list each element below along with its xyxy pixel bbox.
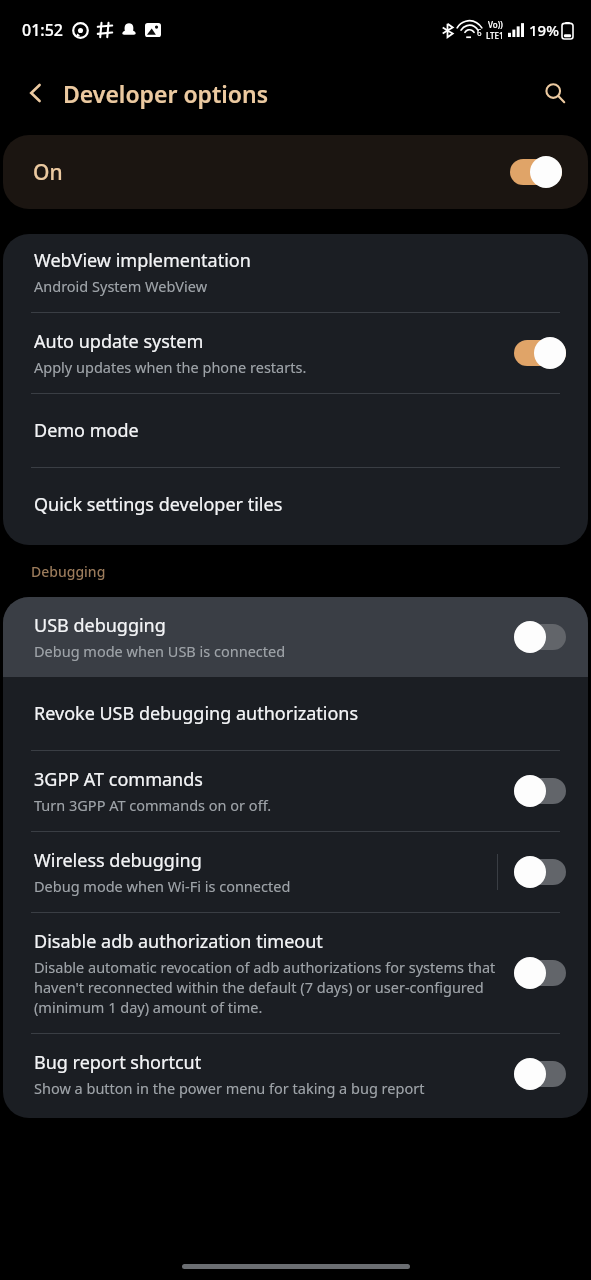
staticText: 19% [529, 20, 559, 40]
staticText: Disable adb authorization timeout [34, 929, 323, 954]
button[interactable]: WebView implementation [3, 234, 588, 312]
staticText: 01:52 [22, 19, 63, 41]
button[interactable]: Back [12, 69, 60, 117]
button[interactable]: Auto update system [3, 313, 588, 393]
staticText: Turn 3GPP AT commands on or off. [34, 795, 272, 815]
staticText: Wireless debugging [34, 848, 202, 873]
staticText: WebView implementation [34, 248, 251, 273]
button[interactable]: Revoke USB debugging authorizations [3, 677, 588, 750]
staticText: USB debugging [34, 613, 166, 638]
button[interactable]: Wireless debugging [3, 832, 588, 912]
button[interactable]: Demo mode [3, 394, 588, 467]
staticText: Debug mode when Wi-Fi is connected [34, 876, 291, 896]
staticText: 3GPP AT commands [34, 767, 203, 792]
staticText: Demo mode [34, 418, 139, 443]
staticText: On [33, 158, 63, 187]
staticText: Auto update system [34, 329, 204, 354]
staticText: Apply updates when the phone restarts. [34, 357, 307, 377]
staticText: LTE1 [486, 30, 504, 41]
staticText: Quick settings developer tiles [34, 492, 283, 517]
staticText: 6 [477, 27, 482, 38]
staticText: Android System WebView [34, 276, 208, 296]
staticText: Developer options [63, 78, 269, 109]
staticText: Vo)) [488, 19, 503, 30]
staticText: Show a button in the power menu for taki… [34, 1078, 425, 1098]
staticText: Debugging [31, 562, 106, 581]
staticText: Debug mode when USB is connected [34, 641, 286, 661]
button[interactable]: Quick settings developer tiles [3, 468, 588, 545]
button[interactable]: Search [531, 69, 579, 117]
staticText: Disable automatic revocation of adb auth… [34, 957, 506, 1017]
button[interactable]: Disable adb authorization timeout [3, 913, 588, 1033]
staticText: Bug report shortcut [34, 1050, 202, 1075]
staticText: Revoke USB debugging authorizations [34, 701, 359, 726]
button[interactable]: On [3, 135, 588, 209]
button[interactable]: Bug report shortcut [3, 1034, 588, 1118]
button[interactable]: USB debugging [3, 597, 588, 677]
button[interactable]: 3GPP AT commands [3, 751, 588, 831]
